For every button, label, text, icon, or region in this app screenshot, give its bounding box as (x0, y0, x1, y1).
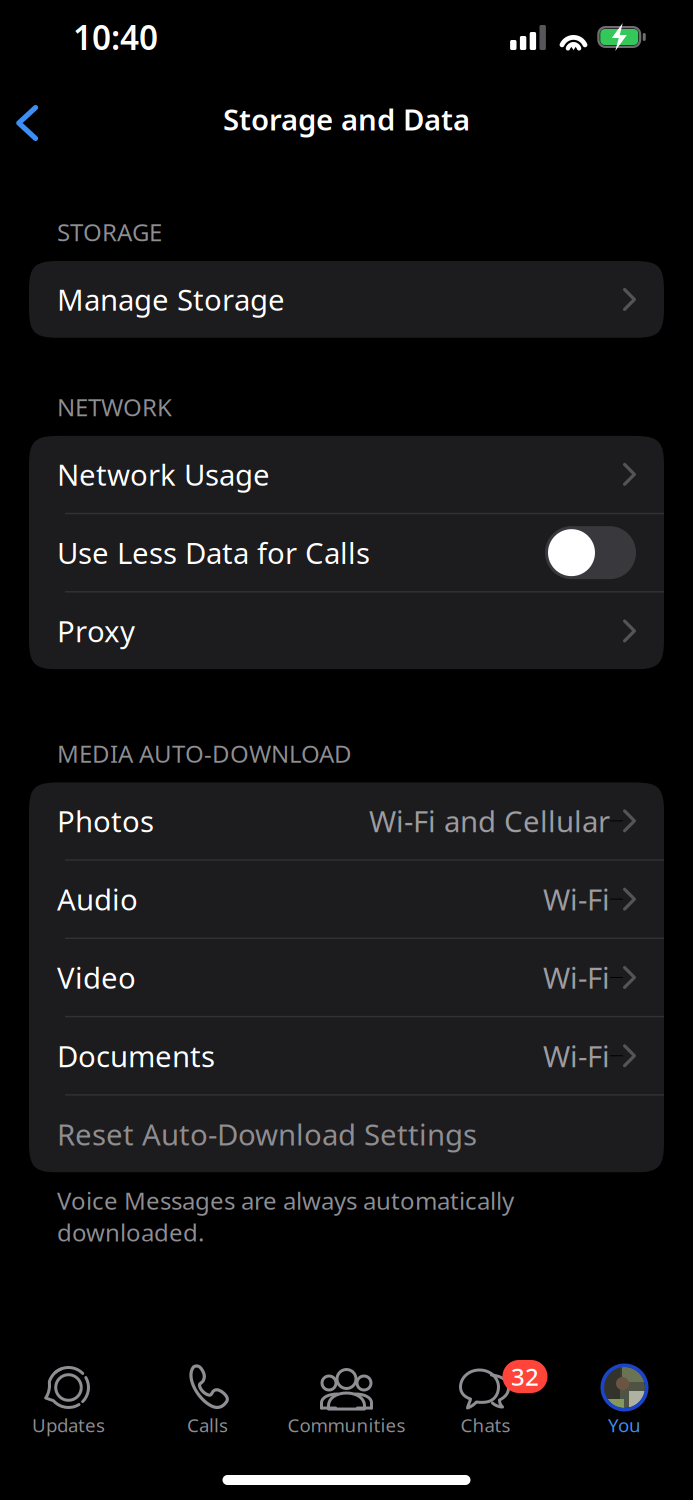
staticText: Calls (187, 1413, 228, 1437)
button[interactable]: 32 (416, 1355, 555, 1445)
staticText: Wi-Fi and Cellular (369, 801, 610, 840)
staticText: Wi-Fi (543, 1036, 610, 1075)
staticText: NETWORK (57, 391, 172, 423)
staticText: Wi-Fi (543, 958, 610, 997)
staticText: MEDIA AUTO-DOWNLOAD (57, 737, 352, 769)
staticText: Reset Auto-Download Settings (57, 1115, 477, 1154)
button[interactable]: Calls (138, 1355, 277, 1445)
button[interactable]: Reset Auto-Download Settings (29, 1096, 664, 1172)
button[interactable]: Audio (29, 861, 664, 938)
button[interactable]: You (555, 1355, 693, 1445)
staticText: Storage and Data (223, 99, 470, 138)
button[interactable]: Manage Storage (29, 261, 664, 338)
button[interactable]: Updates (0, 1355, 138, 1445)
staticText: Photos (57, 801, 154, 840)
staticText: Updates (32, 1413, 105, 1437)
staticText: 32 (511, 1361, 539, 1392)
button[interactable]: Use Less Data for Calls (29, 514, 664, 591)
staticText: Voice Messages are always automatically … (57, 1184, 514, 1248)
staticText: Network Usage (57, 455, 270, 494)
staticText: 10:40 (73, 15, 158, 59)
staticText: Audio (57, 880, 138, 919)
staticText: Wi-Fi (543, 880, 610, 919)
button[interactable]: Documents (29, 1017, 664, 1094)
button[interactable]: Back (0, 74, 60, 164)
staticText: Manage Storage (57, 280, 285, 319)
staticText: Proxy (57, 611, 135, 650)
staticText: STORAGE (57, 216, 162, 248)
button[interactable]: Proxy (29, 592, 664, 669)
staticText: Chats (460, 1413, 510, 1437)
button[interactable]: Network Usage (29, 436, 664, 513)
staticText: Documents (57, 1036, 215, 1075)
button[interactable]: Video (29, 939, 664, 1016)
staticText: You (608, 1413, 641, 1437)
button[interactable]: Communities (277, 1355, 416, 1445)
staticText: Communities (287, 1413, 405, 1437)
button[interactable]: Photos (29, 782, 664, 859)
staticText: Video (57, 958, 136, 997)
staticText: Use Less Data for Calls (57, 533, 370, 572)
